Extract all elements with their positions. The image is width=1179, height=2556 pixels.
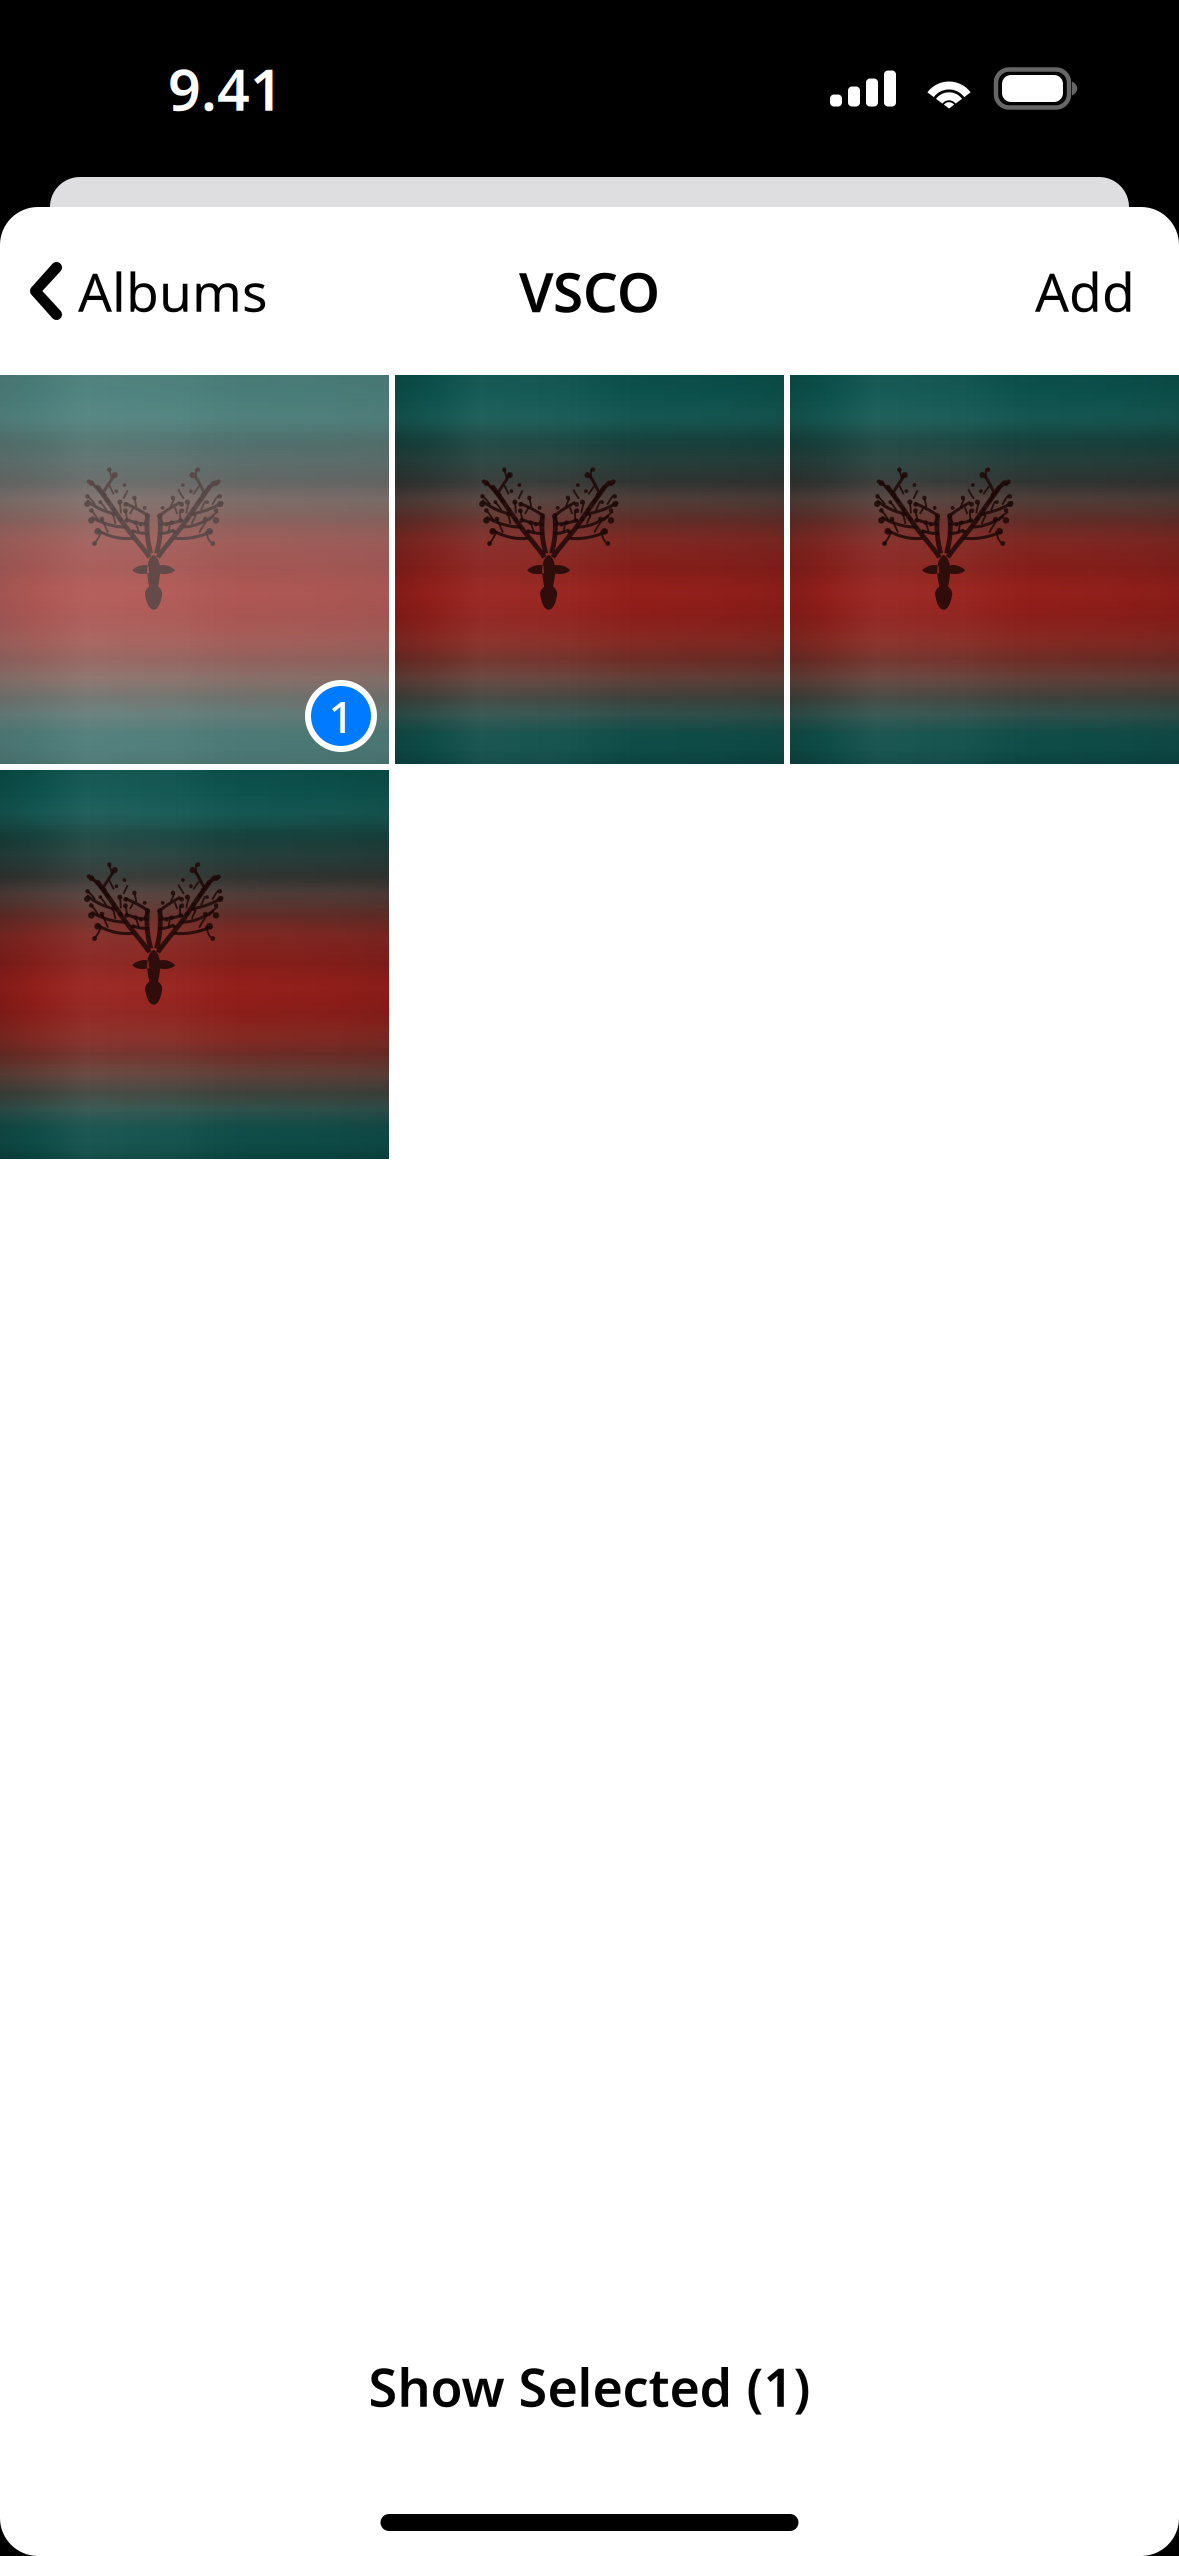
button[interactable]: Photo 4	[0, 770, 389, 1159]
button[interactable]: Photo 2	[395, 375, 784, 764]
staticText: Show Selected (1)	[368, 2352, 810, 2421]
button[interactable]: Photo 1, selected	[0, 375, 389, 764]
staticText: VSCO	[519, 255, 660, 327]
staticText: Add	[1035, 256, 1135, 326]
button[interactable]: Show Selected (1)	[0, 2324, 1179, 2449]
staticText: Albums	[78, 256, 268, 326]
button[interactable]: Add	[1035, 234, 1179, 348]
staticText: 9.41	[168, 50, 283, 126]
staticText: 1	[328, 687, 353, 745]
button[interactable]: Albums	[0, 234, 268, 348]
button[interactable]: Photo 3	[790, 375, 1179, 764]
